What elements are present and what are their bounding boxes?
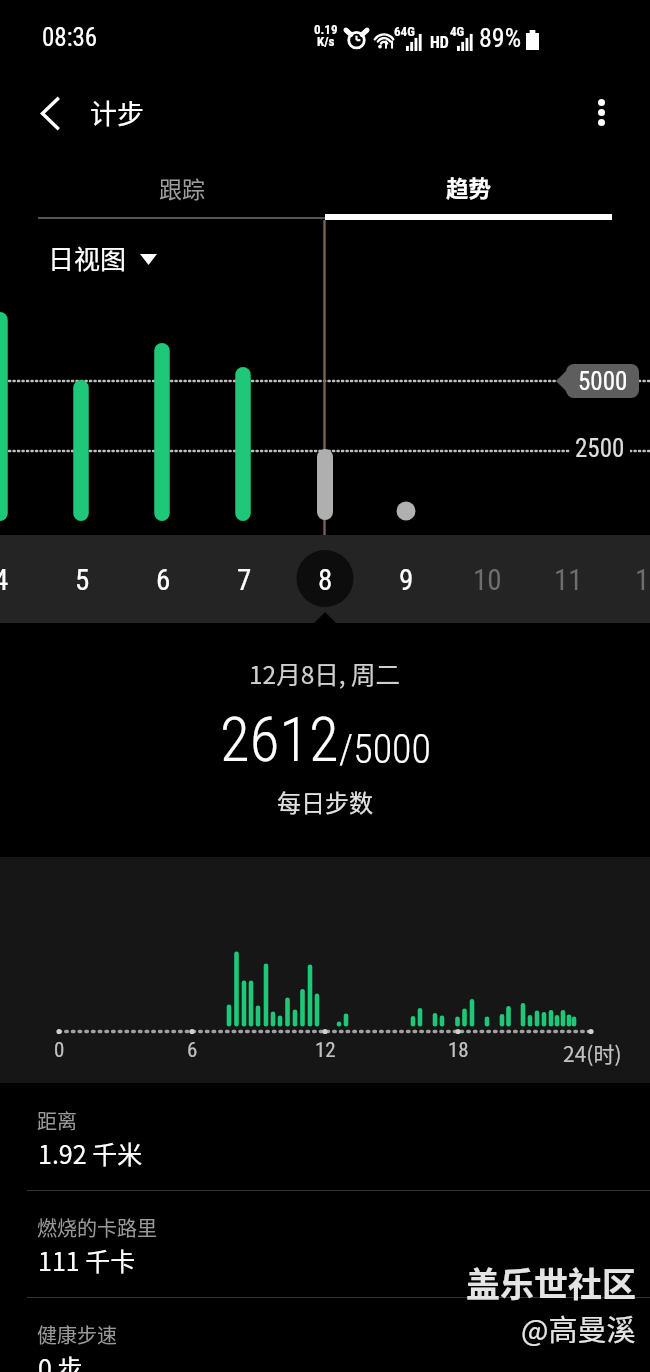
staticText: 12: [315, 1038, 336, 1063]
staticText: 每日步数: [277, 784, 373, 819]
button[interactable]: 跟踪: [38, 157, 325, 217]
button[interactable]: 10: [457, 550, 517, 610]
staticText: 12: [635, 563, 650, 597]
staticText: 6: [156, 563, 171, 597]
staticText: 0: [54, 1038, 65, 1063]
staticText: 盖乐世社区: [466, 1258, 636, 1307]
button[interactable]: 8: [295, 550, 355, 610]
button[interactable]: 9: [376, 550, 436, 610]
button[interactable]: 趋势: [325, 157, 612, 217]
button[interactable]: More options: [576, 87, 626, 137]
staticText: 18: [448, 1038, 469, 1063]
staticText: 计步: [90, 93, 144, 132]
staticText: 89%: [479, 23, 522, 53]
button[interactable]: 日视图: [48, 237, 157, 279]
staticText: 健康步速: [37, 1320, 117, 1349]
staticText: 日视图: [48, 239, 127, 277]
staticText: 5000: [578, 367, 628, 396]
button[interactable]: 健康步速: [0, 1297, 650, 1372]
staticText: @高曼溪: [521, 1307, 636, 1349]
staticText: 10: [473, 563, 502, 597]
button[interactable]: 5: [52, 550, 112, 610]
staticText: HD: [430, 33, 449, 52]
button[interactable]: 12: [619, 550, 650, 610]
button[interactable]: 7: [214, 550, 274, 610]
button[interactable]: Back: [26, 89, 74, 137]
staticText: /5000: [339, 726, 431, 773]
button[interactable]: 4: [0, 550, 31, 610]
staticText: 燃烧的卡路里: [37, 1213, 157, 1242]
staticText: 08:36: [42, 23, 98, 52]
staticText: 距离: [37, 1106, 77, 1135]
staticText: 2500: [575, 434, 625, 463]
staticText: 5: [75, 563, 90, 597]
staticText: 6: [187, 1038, 198, 1063]
button[interactable]: 6: [133, 550, 193, 610]
staticText: 64G: [394, 24, 415, 39]
staticText: 111 千卡: [38, 1242, 136, 1278]
staticText: 8: [318, 563, 333, 597]
staticText: 跟踪: [159, 171, 205, 204]
staticText: 2612: [220, 704, 339, 775]
button[interactable]: 燃烧的卡路里: [0, 1190, 650, 1297]
staticText: 11: [554, 563, 583, 597]
staticText: 24(时): [563, 1038, 622, 1068]
staticText: 0.19: [314, 22, 338, 37]
staticText: 7: [237, 563, 252, 597]
button[interactable]: 距离: [0, 1083, 650, 1190]
staticText: 0 步: [38, 1349, 83, 1372]
staticText: 9: [399, 563, 414, 597]
staticText: 4G: [450, 24, 465, 39]
staticText: 4: [0, 563, 9, 597]
staticText: K/s: [317, 34, 335, 49]
staticText: 12月8日, 周二: [249, 656, 401, 691]
button[interactable]: 11: [538, 550, 598, 610]
staticText: 1.92 千米: [38, 1135, 143, 1171]
staticText: 趋势: [446, 171, 492, 204]
